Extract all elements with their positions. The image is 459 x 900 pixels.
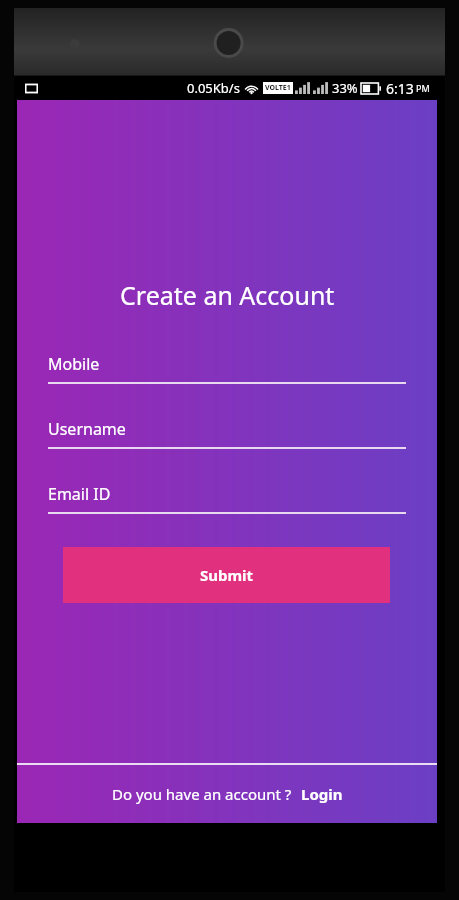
staticText: Email ID (48, 483, 111, 505)
staticText: 6:13 (386, 79, 414, 98)
button[interactable]: Mobile (48, 353, 406, 384)
staticText: Create an Account (120, 278, 335, 312)
staticText: Login (301, 784, 343, 804)
button[interactable]: Login (301, 784, 343, 804)
staticText: Submit (200, 565, 254, 585)
staticText: PM (416, 82, 430, 94)
staticText: Mobile (48, 353, 100, 375)
button[interactable]: Username (48, 418, 406, 449)
staticText: 0.05Kb/s (187, 79, 240, 97)
staticText: Username (48, 418, 126, 440)
staticText: Do you have an account ? (112, 784, 292, 804)
staticText: 33% (332, 79, 358, 97)
button[interactable]: Email ID (48, 483, 406, 514)
button[interactable]: Submit (63, 547, 390, 603)
staticText: VOLTE1 (265, 83, 291, 93)
